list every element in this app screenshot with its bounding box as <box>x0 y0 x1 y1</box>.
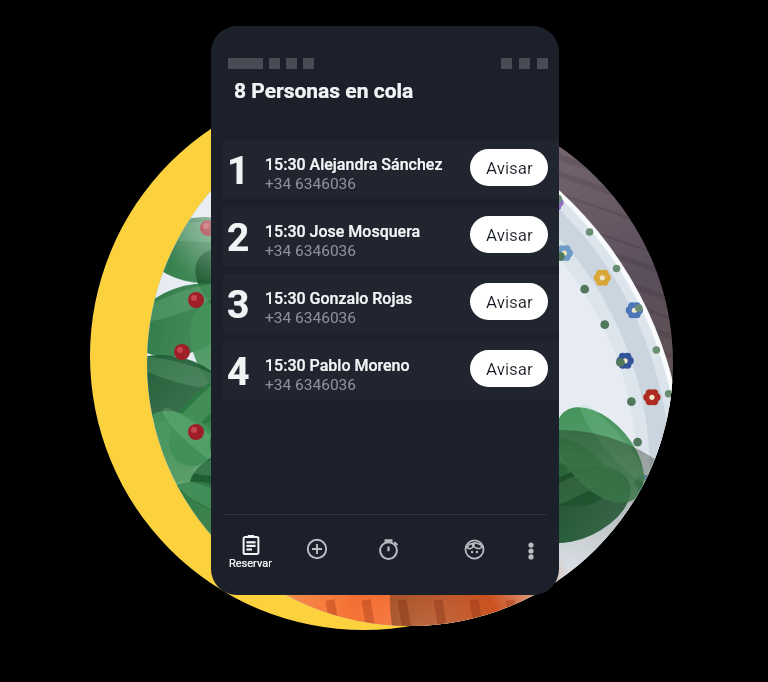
staticText: 15:30 Gonzalo Rojas <box>265 289 413 308</box>
staticText: +34 6346036 <box>265 309 357 327</box>
staticText: Avisar <box>486 292 533 312</box>
button[interactable]: 2 <box>223 207 559 266</box>
button[interactable]: Avisar <box>470 283 548 320</box>
button[interactable]: Timer <box>361 526 415 578</box>
staticText: Avisar <box>486 225 533 245</box>
button[interactable]: Avisar <box>470 216 548 253</box>
button[interactable]: More options <box>504 526 558 578</box>
button[interactable]: 4 <box>223 341 559 400</box>
staticText: 15:30 Jose Mosquera <box>265 222 421 241</box>
staticText: +34 6346036 <box>265 242 357 260</box>
button[interactable]: Reservar <box>223 526 277 578</box>
staticText: 15:30 Alejandra Sánchez <box>265 155 443 174</box>
button[interactable]: Profile <box>447 526 501 578</box>
staticText: 15:30 Pablo Moreno <box>265 356 410 375</box>
button[interactable]: Avisar <box>470 350 548 387</box>
staticText: 1 <box>227 148 265 194</box>
staticText: 8 Personas en cola <box>234 79 414 104</box>
staticText: Reservar <box>229 557 272 570</box>
button[interactable]: 1 <box>223 140 559 199</box>
button[interactable]: 3 <box>223 274 559 333</box>
staticText: +34 6346036 <box>265 175 357 193</box>
staticText: Avisar <box>486 158 533 178</box>
button[interactable]: Avisar <box>470 149 548 186</box>
staticText: +34 6346036 <box>265 376 357 394</box>
staticText: 4 <box>227 349 265 395</box>
staticText: Avisar <box>486 359 533 379</box>
button[interactable]: Add <box>290 526 344 578</box>
staticText: 2 <box>227 215 265 261</box>
staticText: 3 <box>227 282 265 328</box>
